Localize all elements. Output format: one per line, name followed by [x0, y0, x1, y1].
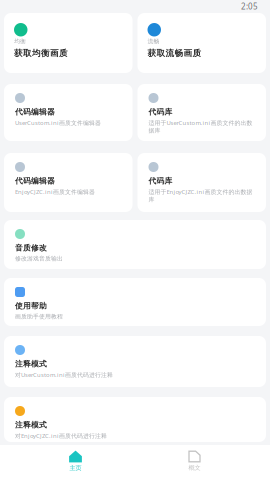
- button[interactable]: 注释模式: [4, 336, 266, 387]
- button[interactable]: 音质修改: [4, 220, 266, 269]
- staticText: 注释模式: [15, 359, 47, 369]
- button[interactable]: 流畅: [137, 13, 266, 73]
- button[interactable]: 代码编辑器: [4, 84, 132, 141]
- button[interactable]: 概文: [135, 450, 254, 471]
- button[interactable]: 均衡: [4, 13, 132, 73]
- staticText: 代码编辑器: [15, 107, 55, 117]
- staticText: 对EnjoyCJZC.ini画质代码进行注释: [15, 432, 107, 440]
- button[interactable]: 代码库: [137, 153, 266, 212]
- staticText: 获取均衡画质: [14, 48, 68, 59]
- staticText: 主页: [69, 464, 81, 472]
- staticText: 音质修改: [15, 243, 47, 253]
- button[interactable]: 主页: [16, 450, 135, 472]
- staticText: 画质助手使用教程: [15, 313, 63, 320]
- staticText: 修改游戏音质输出: [15, 255, 63, 262]
- staticText: 获取流畅画质: [147, 48, 201, 59]
- staticText: 代码库: [148, 176, 172, 186]
- button[interactable]: 代码编辑器: [4, 153, 132, 212]
- staticText: EnjoyCJZC.ini画质文件编辑器: [15, 188, 95, 196]
- staticText: 流畅: [147, 37, 159, 45]
- staticText: UserCustom.ini画质文件编辑器: [15, 119, 101, 127]
- staticText: 适用于UserCustom.ini画质文件的出数据库: [148, 119, 252, 134]
- button[interactable]: 使用帮助: [4, 278, 266, 326]
- button[interactable]: 代码库: [137, 84, 266, 141]
- staticText: 概文: [188, 464, 200, 471]
- staticText: 代码库: [148, 107, 172, 117]
- staticText: 对UserCustom.ini画质代码进行注释: [15, 371, 113, 379]
- staticText: 使用帮助: [15, 301, 47, 311]
- staticText: 代码编辑器: [15, 176, 55, 186]
- button[interactable]: 注释模式: [4, 397, 266, 442]
- staticText: 适用于EnjoyCJZC.ini画质文件的出数据库: [148, 188, 252, 203]
- staticText: 2:05: [241, 1, 258, 12]
- staticText: 均衡: [14, 37, 26, 45]
- staticText: 注释模式: [15, 420, 47, 430]
